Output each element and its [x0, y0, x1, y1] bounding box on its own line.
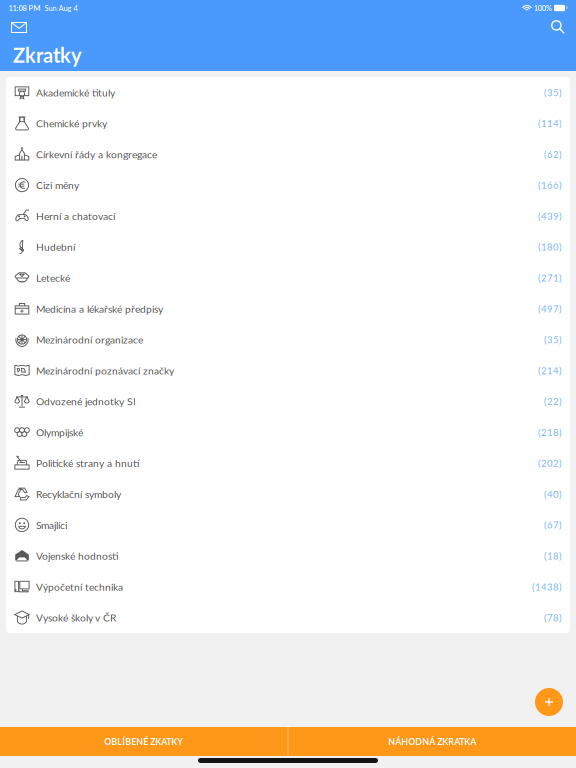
staticText: 11:08 PM	[8, 3, 40, 12]
staticText: Vojenské hodnosti	[36, 550, 118, 562]
staticText: Výpočetní technika	[36, 580, 123, 593]
staticText: (214)	[538, 365, 562, 376]
button[interactable]: Odvozené jednotky SI	[6, 386, 570, 417]
button[interactable]: NÁHODNÁ ZKRATKA	[288, 727, 576, 756]
staticText: 100%	[532, 3, 552, 12]
button[interactable]: Vojenské hodnosti	[6, 540, 570, 571]
button[interactable]: Církevní řády a kongregace	[6, 139, 570, 170]
button[interactable]: Add abbreviation	[535, 688, 563, 716]
staticText: OBLÍBENÉ ZKATKY	[104, 736, 183, 747]
staticText: (271)	[538, 272, 562, 283]
staticText: Církevní řády a kongregace	[36, 148, 157, 160]
staticText: (62)	[544, 148, 562, 160]
staticText: Smajlíci	[36, 519, 67, 531]
staticText: NÁHODNÁ ZKRATKA	[388, 736, 476, 747]
staticText: Hudební	[36, 241, 75, 253]
staticText: Sun Aug 4	[40, 3, 77, 12]
staticText: (67)	[544, 519, 562, 531]
button[interactable]: Messages	[0, 16, 35, 39]
staticText: (497)	[538, 303, 562, 314]
staticText: (218)	[538, 426, 562, 438]
staticText: (78)	[544, 612, 562, 623]
staticText: (1438)	[532, 581, 562, 592]
staticText: (40)	[544, 488, 562, 500]
button[interactable]: Hudební	[6, 231, 570, 262]
button[interactable]: Recyklační symboly	[6, 479, 570, 509]
staticText: (180)	[538, 241, 562, 253]
staticText: (22)	[544, 396, 562, 407]
staticText: Akademické tituly	[36, 86, 115, 99]
staticText: Politické strany a hnutí	[36, 457, 139, 469]
staticText: Letecké	[36, 272, 70, 284]
staticText: Medicína a lékařské předpisy	[36, 302, 163, 315]
button[interactable]: Akademické tituly	[6, 77, 570, 108]
staticText: Recyklační symboly	[36, 488, 121, 500]
button[interactable]: Cizí měny	[6, 170, 570, 201]
button[interactable]: OBLÍBENÉ ZKATKY	[0, 727, 287, 756]
button[interactable]: Medicína a lékařské předpisy	[6, 293, 570, 324]
button[interactable]: Vysoké školy v ČR	[6, 602, 570, 633]
staticText: Odvozené jednotky SI	[36, 395, 136, 407]
staticText: Zkratky	[13, 43, 82, 67]
button[interactable]: Politické strany a hnutí	[6, 448, 570, 479]
button[interactable]: Chemické prvky	[6, 108, 570, 139]
staticText: (35)	[544, 87, 562, 98]
button[interactable]: Herní a chatovací	[6, 201, 570, 231]
button[interactable]: Letecké	[6, 262, 570, 293]
staticText: (35)	[544, 334, 562, 345]
button[interactable]: Smajlíci	[6, 509, 570, 540]
staticText: Mezinárodní poznávací značky	[36, 364, 174, 377]
staticText: (166)	[538, 179, 562, 191]
staticText: Chemické prvky	[36, 117, 107, 129]
button[interactable]: Mezinárodní poznávací značky	[6, 355, 570, 386]
staticText: Cizí měny	[36, 179, 79, 191]
button[interactable]: Olympijské	[6, 417, 570, 448]
staticText: Vysoké školy v ČR	[36, 611, 116, 624]
button[interactable]: Výpočetní technika	[6, 571, 570, 602]
button[interactable]: Search	[543, 16, 576, 39]
staticText: Herní a chatovací	[36, 210, 115, 222]
staticText: (202)	[538, 457, 562, 469]
staticText: (114)	[538, 118, 562, 129]
staticText: Olympijské	[36, 426, 83, 438]
staticText: Mezinárodní organizace	[36, 333, 143, 346]
staticText: (18)	[544, 550, 562, 561]
button[interactable]: Mezinárodní organizace	[6, 324, 570, 355]
staticText: (439)	[538, 210, 562, 222]
